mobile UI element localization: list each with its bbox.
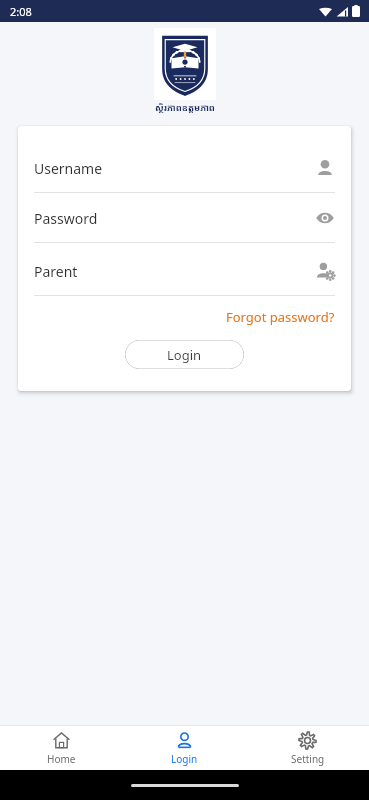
- staticText: Password: [34, 209, 315, 228]
- staticText: Home: [47, 752, 76, 766]
- button[interactable]: Password: [34, 194, 335, 242]
- button[interactable]: Login: [125, 340, 244, 369]
- button[interactable]: Forgot password?: [226, 306, 335, 328]
- button[interactable]: Setting: [246, 726, 369, 770]
- staticText: 2:08: [10, 4, 32, 19]
- button[interactable]: Home: [0, 726, 123, 770]
- button[interactable]: Login: [123, 726, 246, 770]
- staticText: Login: [167, 346, 202, 364]
- staticText: Username: [34, 159, 315, 178]
- staticText: ស្ថិរភាពឧត្តមភាព: [155, 101, 215, 113]
- staticText: Setting: [291, 752, 325, 766]
- button[interactable]: Username: [34, 144, 335, 192]
- staticText: Login: [171, 752, 198, 766]
- button[interactable]: Parent: [34, 247, 335, 295]
- staticText: Parent: [34, 262, 315, 281]
